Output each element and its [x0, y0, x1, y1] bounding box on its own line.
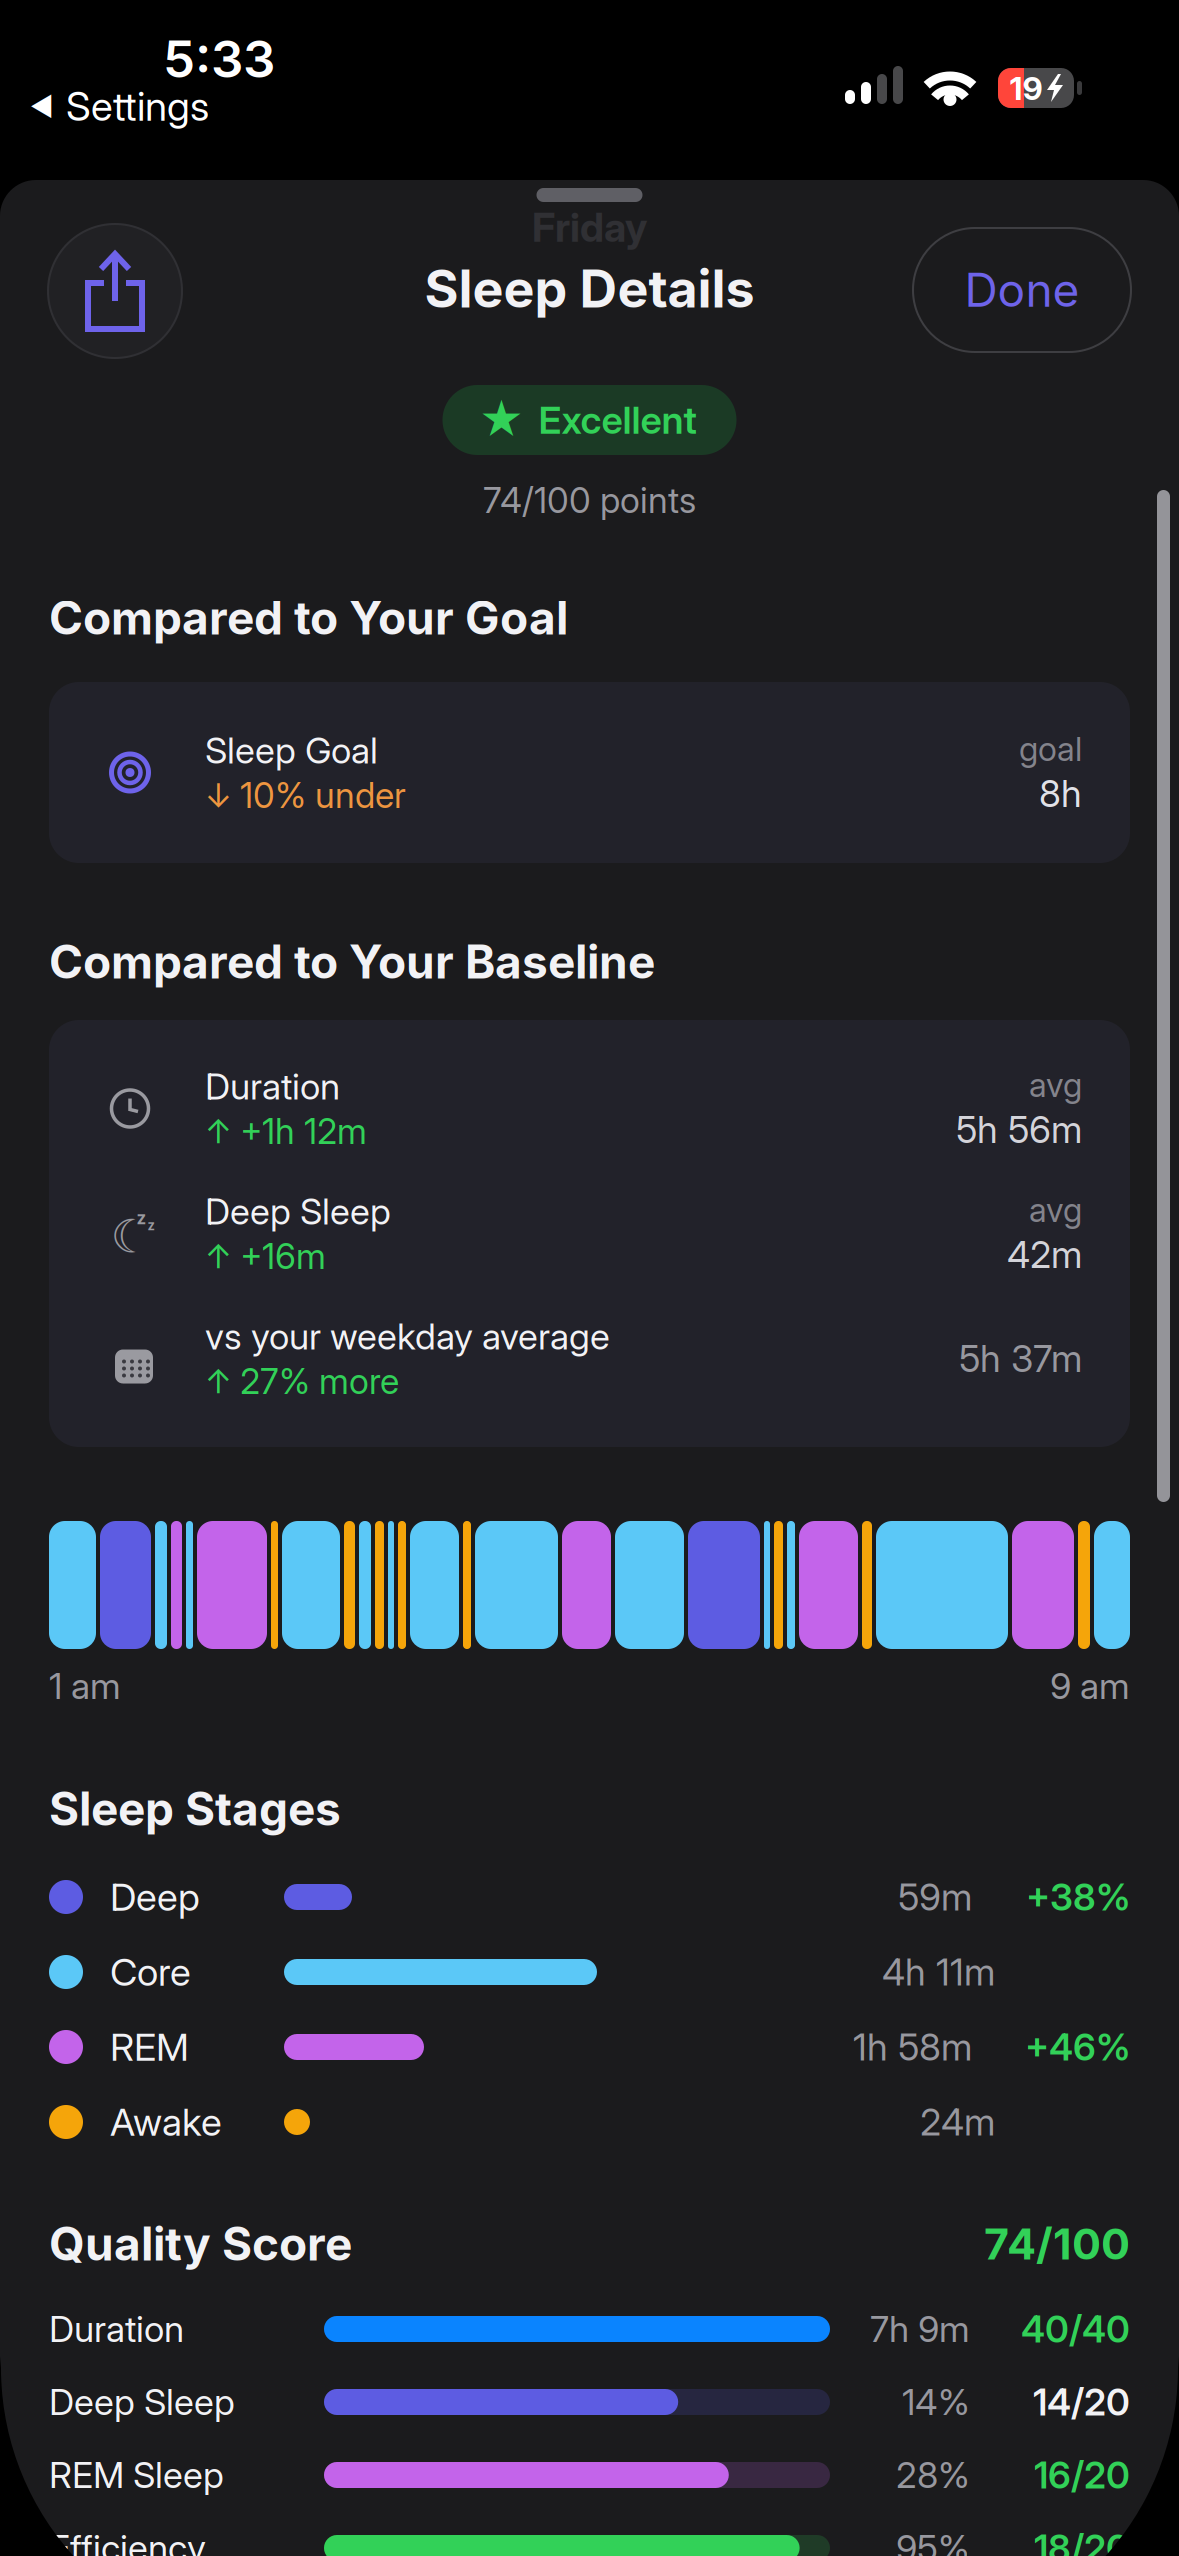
staticText: ↑: [205, 1111, 232, 1151]
staticText: Compared to Your Baseline: [49, 934, 655, 990]
staticText: avg: [1029, 1065, 1082, 1105]
staticText: 9 am: [1050, 1664, 1130, 1708]
staticText: 5h 56m: [956, 1107, 1082, 1152]
staticText: avg: [1029, 1190, 1082, 1230]
staticText: 1h 58m: [853, 2025, 972, 2069]
staticText: 14/20: [1033, 2380, 1130, 2424]
staticText: 1 am: [49, 1664, 121, 1708]
staticText: +46%: [1025, 2025, 1130, 2069]
staticText: 8h: [1039, 771, 1082, 816]
staticText: 24m: [920, 2100, 995, 2144]
staticText: z: [136, 1208, 146, 1228]
staticText: 59m: [898, 1875, 972, 1919]
staticText: Deep Sleep: [205, 1189, 391, 1233]
staticText: REM: [110, 2024, 189, 2070]
staticText: 74/100 points: [483, 479, 696, 521]
button[interactable]: Done: [913, 228, 1131, 352]
staticText: Efficiency: [49, 2526, 206, 2556]
staticText: 4h 11m: [882, 1950, 995, 1994]
staticText: Settings: [66, 82, 209, 130]
staticText: REM Sleep: [49, 2453, 224, 2497]
staticText: +1h 12m: [240, 1110, 367, 1152]
staticText: Duration: [49, 2307, 184, 2351]
staticText: 19: [1009, 69, 1042, 108]
staticText: 7h 9m: [870, 2307, 970, 2351]
staticText: Friday: [532, 203, 647, 251]
staticText: 16/20: [1034, 2453, 1130, 2497]
staticText: Sleep Stages: [49, 1781, 341, 1837]
staticText: +16m: [240, 1235, 326, 1277]
staticText: Excellent: [538, 397, 696, 443]
staticText: ★: [478, 393, 524, 447]
staticText: Done: [964, 262, 1079, 318]
staticText: +38%: [1026, 1875, 1130, 1919]
staticText: 27% more: [240, 1360, 399, 1402]
staticText: 18/20: [1034, 2526, 1130, 2556]
staticText: 5h 37m: [959, 1336, 1082, 1381]
staticText: Deep: [110, 1874, 200, 1920]
staticText: ◀: [30, 90, 54, 122]
staticText: Awake: [110, 2099, 222, 2145]
staticText: ↑: [205, 1361, 232, 1401]
staticText: 10% under: [240, 774, 406, 816]
staticText: 28%: [896, 2453, 970, 2497]
staticText: goal: [1019, 729, 1082, 769]
button[interactable]: ◀: [30, 82, 209, 130]
staticText: ↓: [205, 775, 232, 815]
staticText: Quality Score: [49, 2216, 352, 2272]
staticText: Deep Sleep: [49, 2380, 235, 2424]
staticText: Sleep Details: [424, 257, 754, 320]
staticText: Sleep Goal: [205, 728, 378, 772]
staticText: Duration: [205, 1064, 340, 1108]
staticText: ↑: [205, 1236, 232, 1276]
staticText: 14%: [902, 2380, 970, 2424]
button[interactable]: [48, 224, 182, 358]
staticText: 42m: [1007, 1232, 1082, 1277]
staticText: vs your weekday average: [205, 1314, 610, 1358]
staticText: 5:33: [163, 28, 275, 90]
staticText: Compared to Your Goal: [49, 590, 568, 646]
staticText: 74/100: [984, 2218, 1130, 2270]
staticText: 40/40: [1021, 2307, 1130, 2351]
staticText: Core: [110, 1949, 191, 1995]
staticText: z: [147, 1218, 154, 1233]
staticText: ☾: [110, 1210, 151, 1263]
staticText: 95%: [896, 2526, 970, 2556]
